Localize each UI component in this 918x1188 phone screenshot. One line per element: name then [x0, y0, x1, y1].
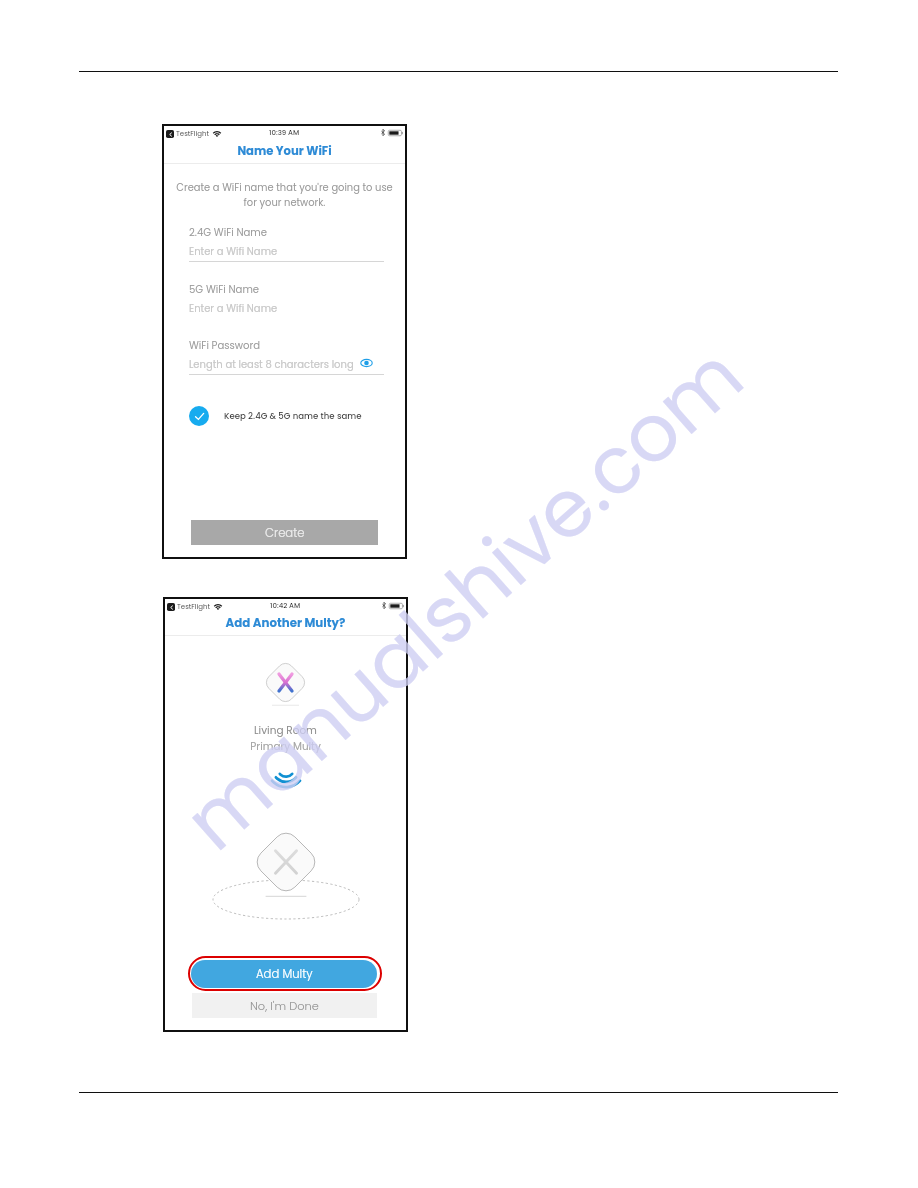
button[interactable]: Show password: [358, 354, 375, 371]
button[interactable]: Add Multy: [191, 960, 377, 988]
staticText: TestFlight: [177, 602, 211, 612]
staticText: Add Multy: [256, 966, 313, 982]
staticText: Keep 2.4G & 5G name the same: [224, 410, 362, 422]
staticText: Create a WiFi name that you're going to …: [167, 181, 402, 209]
staticText: 2.4G WiFi Name: [189, 225, 267, 239]
staticText: TestFlight: [176, 129, 210, 139]
staticText: Living Room: [164, 723, 407, 738]
staticText: Enter a Wifi Name: [189, 244, 278, 258]
staticText: 10:39 AM: [269, 128, 300, 138]
staticText: Create: [265, 525, 305, 541]
staticText: WiFi Password: [189, 338, 261, 352]
staticText: 10:42 AM: [270, 601, 301, 611]
button[interactable]: No, I'm Done: [192, 993, 377, 1018]
staticText: Add Another Multy?: [164, 615, 407, 632]
staticText: Enter a Wifi Name: [189, 301, 278, 315]
staticText: No, I'm Done: [250, 998, 319, 1014]
button[interactable]: Create: [191, 520, 378, 545]
button[interactable]: Keep 2.4G & 5G name the same: [189, 406, 349, 428]
staticText: manualshive.com: [161, 322, 767, 875]
staticText: 5G WiFi Name: [189, 282, 260, 296]
staticText: Primary Multy: [164, 739, 407, 754]
staticText: Name Your WiFi: [163, 143, 406, 159]
staticText: Length at least 8 characters long: [189, 357, 354, 371]
